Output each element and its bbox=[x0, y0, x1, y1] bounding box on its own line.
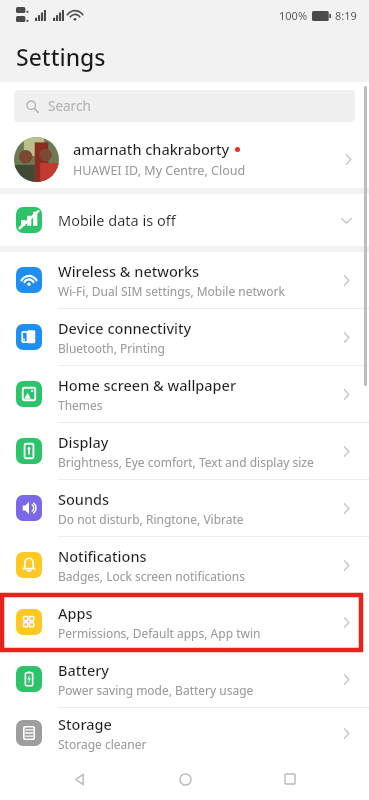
staticText: Wireless & networks bbox=[58, 261, 200, 281]
staticText: Battery bbox=[58, 660, 109, 680]
staticText: 100% bbox=[279, 8, 308, 23]
staticText: Brightness, Eye comfort, Text and displa… bbox=[58, 454, 314, 470]
staticText: Storage cleaner bbox=[58, 736, 147, 752]
staticText: Search bbox=[48, 97, 91, 115]
staticText: Power saving mode, Battery usage bbox=[58, 682, 254, 698]
staticText: Notifications bbox=[58, 546, 147, 566]
button[interactable]: Display bbox=[0, 423, 369, 479]
staticText: Do not disturb, Ringtone, Vibrate bbox=[58, 511, 244, 527]
staticText: Bluetooth, Printing bbox=[58, 340, 165, 356]
staticText: Settings bbox=[16, 41, 106, 72]
staticText: Home screen & wallpaper bbox=[58, 375, 237, 395]
staticText: 8:19 bbox=[335, 8, 357, 23]
button[interactable]: Mobile data is off bbox=[0, 194, 369, 246]
button[interactable]: Home bbox=[158, 758, 212, 800]
button[interactable]: Sounds bbox=[0, 480, 369, 536]
staticText: Themes bbox=[58, 397, 103, 413]
staticText: Permissions, Default apps, App twin bbox=[58, 625, 261, 641]
button[interactable]: Back bbox=[52, 758, 106, 800]
staticText: Badges, Lock screen notifications bbox=[58, 568, 245, 584]
staticText: HUAWEI ID, My Centre, Cloud bbox=[73, 162, 246, 179]
staticText: Device connectivity bbox=[58, 318, 192, 338]
button[interactable]: Wireless & networks bbox=[0, 252, 369, 308]
staticText: Display bbox=[58, 432, 109, 452]
button[interactable]: Battery bbox=[0, 651, 369, 707]
button[interactable]: Search bbox=[14, 90, 355, 122]
button[interactable]: Storage bbox=[0, 708, 369, 758]
staticText: Mobile data is off bbox=[58, 210, 340, 230]
button[interactable]: Device connectivity bbox=[0, 309, 369, 365]
staticText: Sounds bbox=[58, 489, 110, 509]
button[interactable]: amarnath chakraborty bbox=[0, 130, 369, 188]
button[interactable]: Apps bbox=[0, 594, 369, 650]
button[interactable]: Notifications bbox=[0, 537, 369, 593]
button[interactable]: Recent apps bbox=[263, 758, 317, 800]
staticText: Wi-Fi, Dual SIM settings, Mobile network bbox=[58, 283, 285, 299]
button[interactable]: Home screen & wallpaper bbox=[0, 366, 369, 422]
staticText: Storage bbox=[58, 714, 112, 734]
staticText: amarnath chakraborty bbox=[73, 139, 230, 159]
staticText: Apps bbox=[58, 603, 93, 623]
